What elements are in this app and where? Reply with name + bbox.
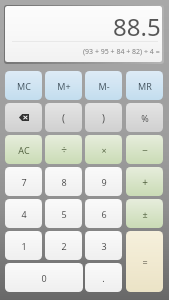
staticText: 7 [21, 176, 27, 188]
button[interactable]: = [126, 231, 163, 292]
button[interactable]: 8 [45, 167, 82, 196]
staticText: ± [142, 208, 148, 220]
staticText: + [142, 175, 148, 189]
button[interactable]: MR [126, 71, 163, 100]
button[interactable]: M+ [45, 71, 82, 100]
staticText: ) [102, 111, 105, 125]
button[interactable]: 4 [5, 199, 42, 228]
staticText: × [101, 144, 107, 156]
button[interactable]: ± [126, 199, 163, 228]
staticText: 1 [21, 240, 27, 252]
staticText: 0 [41, 272, 47, 284]
staticText: 8 [61, 176, 67, 188]
button[interactable]: ( [45, 103, 82, 132]
button[interactable]: × [85, 135, 122, 164]
button[interactable]: 0 [5, 263, 83, 292]
button[interactable]: 9 [85, 167, 122, 196]
staticText: ÷ [61, 143, 67, 157]
staticText: 5 [61, 208, 67, 220]
button[interactable]: ÷ [45, 135, 82, 164]
button[interactable]: AC [5, 135, 42, 164]
staticText: % [141, 112, 149, 124]
staticText: 2 [61, 240, 67, 252]
staticText: 6 [101, 208, 107, 220]
staticText: = [142, 256, 148, 268]
staticText: 88.5 [113, 10, 161, 43]
button[interactable]: . [85, 263, 122, 292]
staticText: 9 [101, 176, 107, 188]
button[interactable]: + [126, 167, 163, 196]
staticText: 3 [101, 240, 107, 252]
button[interactable]: 5 [45, 199, 82, 228]
staticText: MR [138, 80, 152, 92]
staticText: AC [18, 144, 30, 156]
button[interactable]: 3 [85, 231, 122, 260]
button[interactable]: 7 [5, 167, 42, 196]
staticText: MC [17, 80, 31, 92]
staticText: ( [62, 111, 65, 125]
staticText: 4 [21, 208, 27, 220]
button[interactable]: MC [5, 71, 42, 100]
button[interactable]: 1 [5, 231, 42, 260]
button[interactable]: 6 [85, 199, 122, 228]
staticText: M- [98, 80, 110, 92]
button[interactable]: − [126, 135, 163, 164]
button[interactable]: % [126, 103, 163, 132]
staticText: − [142, 143, 148, 157]
button[interactable]: ) [85, 103, 122, 132]
staticText: (93 + 95 + 84 + 82) ÷ 4 = [83, 47, 160, 57]
staticText: M+ [57, 80, 71, 92]
button[interactable]: Backspace [5, 103, 42, 132]
button[interactable]: M- [85, 71, 122, 100]
button[interactable]: 2 [45, 231, 82, 260]
staticText: . [102, 272, 105, 284]
